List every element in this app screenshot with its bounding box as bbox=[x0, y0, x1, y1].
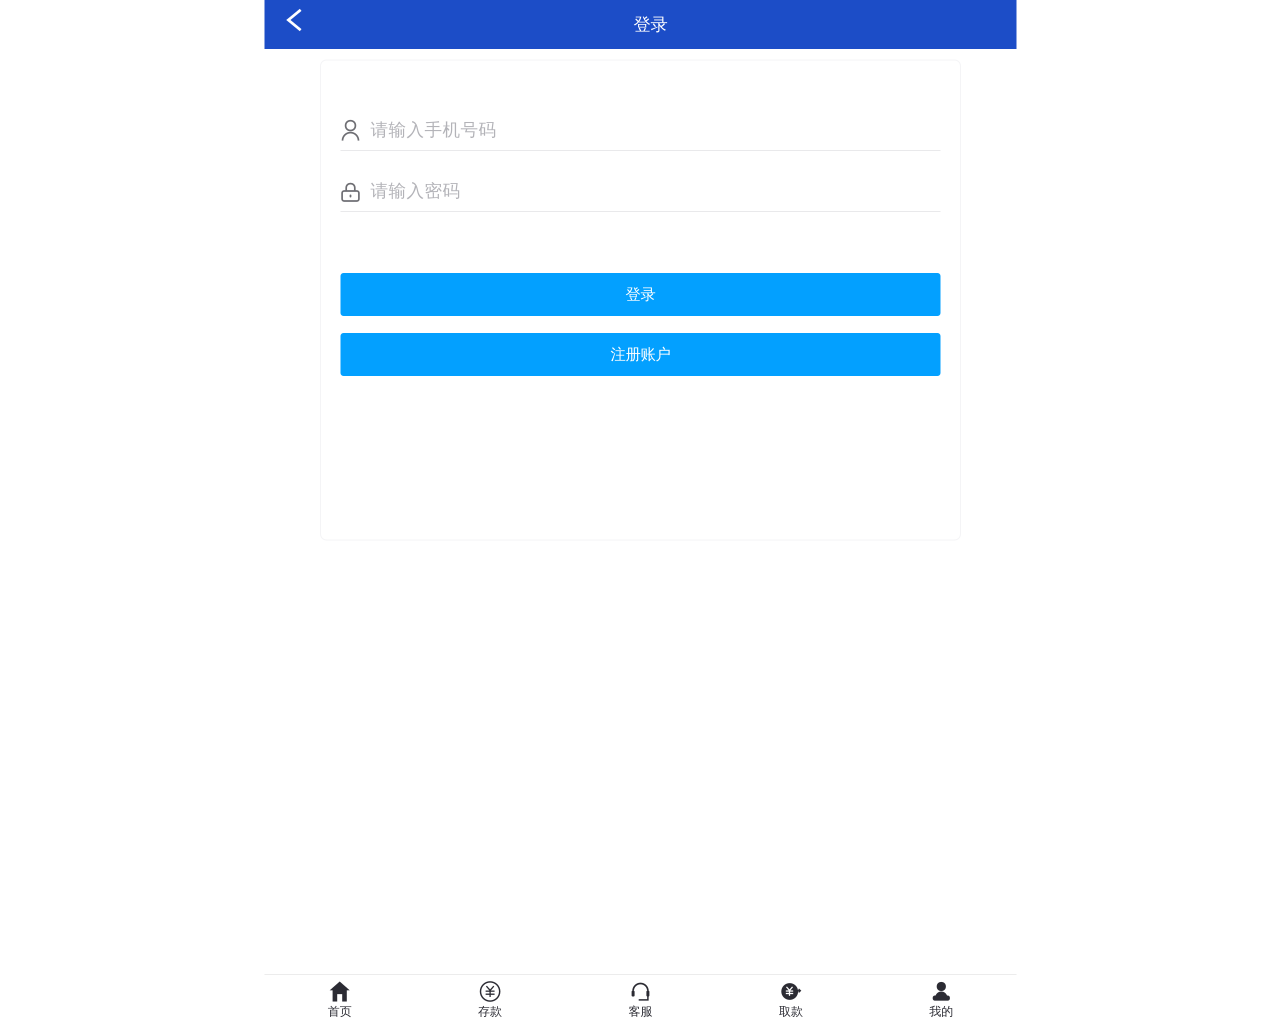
button[interactable]: 存款 bbox=[415, 975, 565, 1024]
staticText: 登录 bbox=[633, 14, 667, 35]
staticText: 注册账户 bbox=[610, 345, 670, 364]
button[interactable]: 登录 bbox=[340, 273, 940, 316]
button[interactable]: 我的 bbox=[866, 975, 1016, 1024]
staticText: 我的 bbox=[929, 1004, 953, 1019]
staticText: 首页 bbox=[328, 1004, 352, 1019]
staticText: 客服 bbox=[628, 1004, 652, 1019]
button[interactable]: 请输入手机号码 bbox=[340, 110, 940, 151]
staticText: 登录 bbox=[625, 285, 655, 304]
button[interactable]: 首页 bbox=[264, 975, 415, 1024]
button[interactable]: 请输入密码 bbox=[340, 171, 940, 212]
button[interactable]: 取款 bbox=[716, 975, 866, 1024]
button[interactable]: 返回 bbox=[271, 0, 317, 40]
staticText: 请输入手机号码 bbox=[370, 119, 496, 141]
staticText: 取款 bbox=[779, 1004, 803, 1019]
button[interactable]: 注册账户 bbox=[340, 333, 940, 376]
staticText: 存款 bbox=[478, 1004, 502, 1019]
staticText: 请输入密码 bbox=[370, 180, 460, 202]
button[interactable]: 客服 bbox=[565, 975, 716, 1024]
